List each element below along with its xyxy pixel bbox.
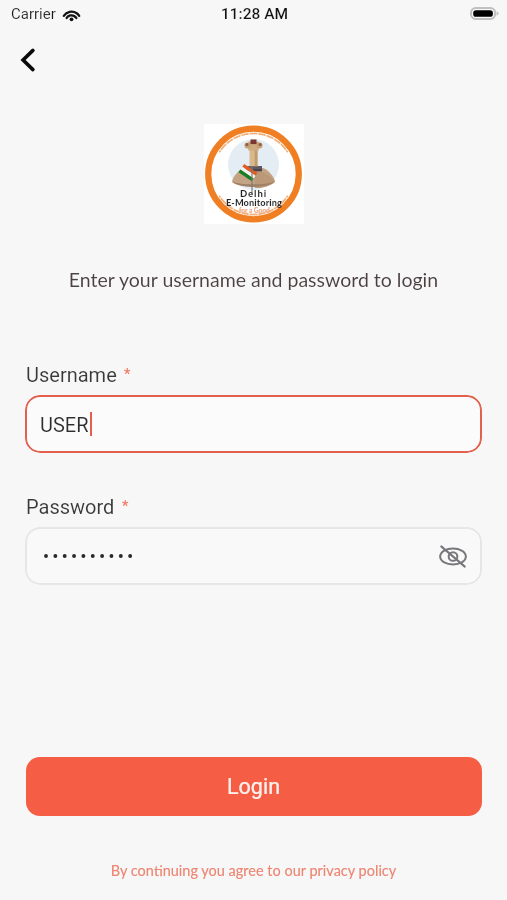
staticText: for a Good [239, 207, 270, 215]
staticText: * [122, 497, 129, 515]
staticText: Login [227, 774, 281, 799]
staticText: Carrier [11, 5, 56, 23]
staticText: Enter your username and password to logi… [0, 268, 507, 291]
staticText: E-Monitoring [226, 197, 283, 208]
button[interactable]: Show password [435, 538, 471, 574]
button[interactable]: USER [25, 395, 482, 453]
button[interactable]: Login [26, 757, 482, 816]
staticText: 11:28 AM [221, 5, 289, 23]
staticText: * [124, 365, 131, 383]
staticText: Delhi [240, 188, 268, 199]
button[interactable]: Back [6, 38, 50, 82]
staticText: Username [26, 363, 117, 386]
button[interactable]: By continuing you agree to our privacy p… [0, 862, 507, 879]
staticText: USER [40, 413, 89, 436]
staticText: Password [26, 495, 115, 518]
button[interactable]: Show password [25, 527, 482, 585]
